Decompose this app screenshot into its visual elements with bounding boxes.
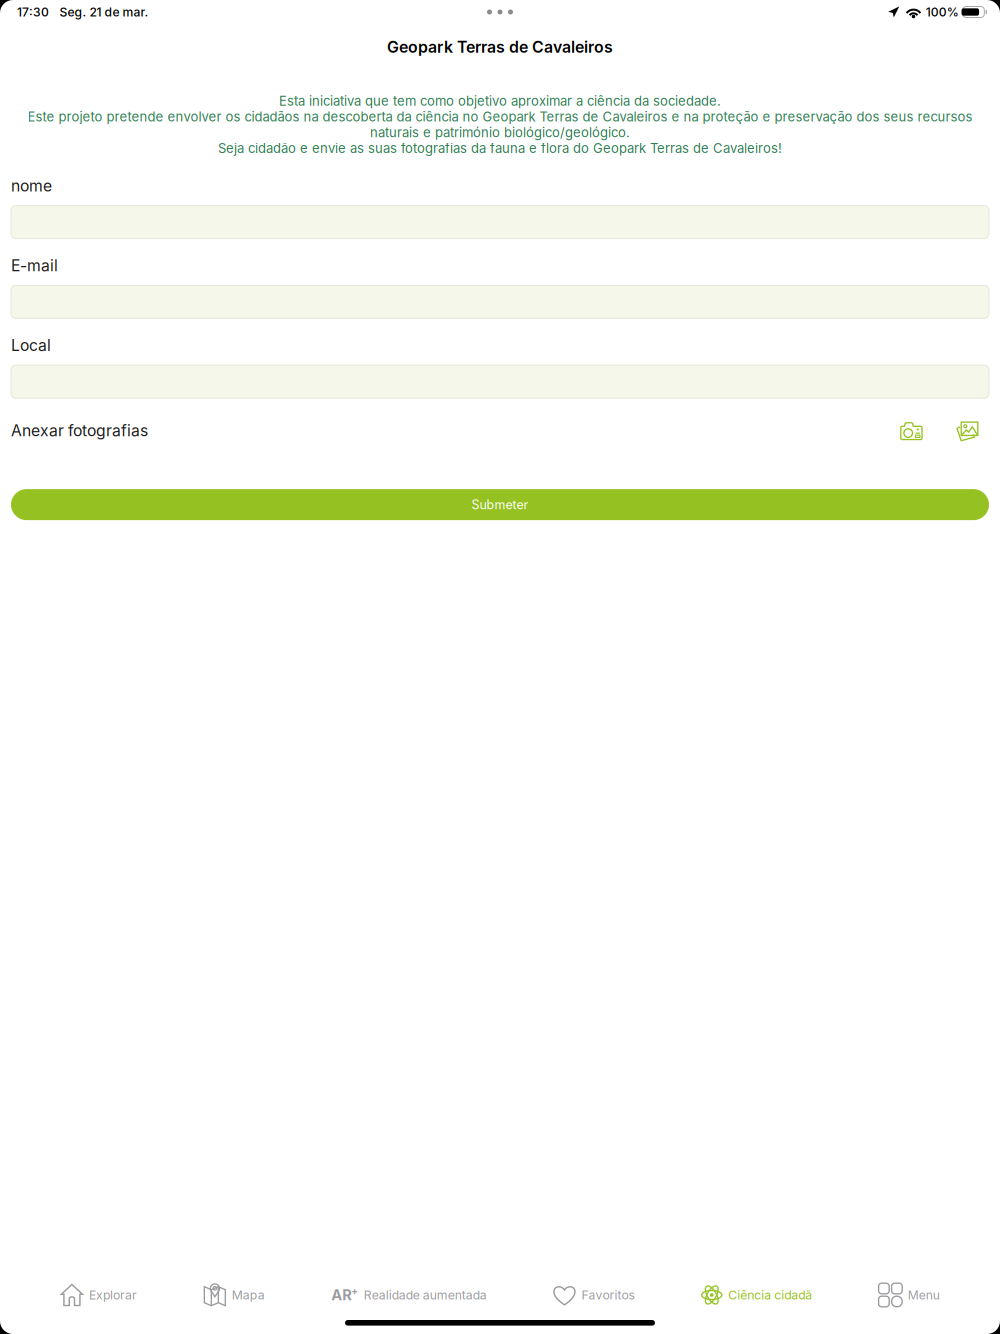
button[interactable]: Submeter	[11, 489, 989, 520]
staticText: AR	[331, 1286, 352, 1304]
staticText: Submeter	[471, 497, 528, 512]
staticText: naturais e património biológico/geológic…	[370, 125, 630, 140]
staticText: Anexar fotografias	[11, 421, 148, 440]
button[interactable]: Favoritos	[547, 1273, 640, 1317]
staticText: nome	[11, 176, 52, 195]
staticText: Mapa	[232, 1288, 265, 1302]
staticText: Explorar	[89, 1288, 137, 1302]
staticText: 100%	[926, 5, 959, 19]
staticText: 17:30	[17, 5, 49, 19]
staticText: Seg. 21 de mar.	[59, 5, 148, 19]
staticText: Local	[11, 336, 51, 355]
staticText: Menu	[908, 1288, 940, 1302]
button[interactable]: Ciência cidadã	[695, 1273, 818, 1317]
button[interactable]: Tirar fotografia	[900, 420, 923, 441]
staticText: +	[351, 1284, 358, 1297]
staticText: Este projeto pretende envolver os cidadã…	[27, 109, 972, 125]
button[interactable]: AR	[325, 1273, 493, 1317]
staticText: Ciência cidadã	[728, 1288, 812, 1302]
staticText: Favoritos	[581, 1288, 634, 1302]
button[interactable]: Explorar	[54, 1273, 143, 1317]
staticText: Geopark Terras de Cavaleiros	[387, 37, 613, 57]
staticText: E-mail	[11, 256, 58, 275]
button[interactable]: Menu	[873, 1273, 946, 1317]
button[interactable]: Escolher fotografia da galeria	[956, 420, 979, 441]
button[interactable]: Mapa	[197, 1273, 271, 1317]
staticText: Esta iniciativa que tem como objetivo ap…	[279, 93, 721, 109]
staticText: Seja cidadão e envie as suas fotografias…	[218, 140, 782, 156]
staticText: Realidade aumentada	[364, 1288, 487, 1302]
